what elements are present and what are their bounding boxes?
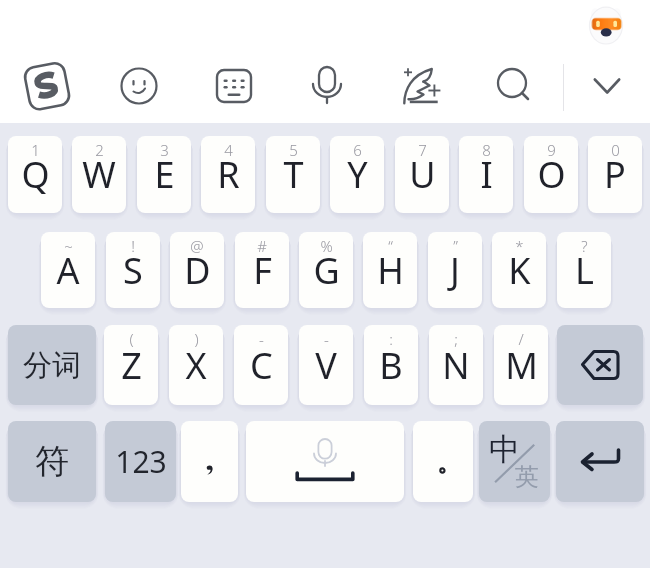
button[interactable]: - xyxy=(299,325,353,405)
staticText: T xyxy=(283,150,304,199)
staticText: S xyxy=(123,246,143,295)
button[interactable]: Chinese English toggle xyxy=(479,421,550,502)
staticText: K xyxy=(508,246,531,295)
staticText: * xyxy=(515,236,524,256)
button[interactable]: “ xyxy=(363,232,417,308)
staticText: H xyxy=(377,246,404,295)
staticText: F xyxy=(253,246,272,295)
button[interactable]: 7 xyxy=(395,136,449,213)
staticText: M xyxy=(505,341,538,390)
button[interactable]: ( xyxy=(104,325,158,405)
staticText: 3 xyxy=(160,140,169,160)
button[interactable]: 123 xyxy=(105,421,176,502)
button[interactable]: Comma xyxy=(181,421,238,502)
button[interactable]: 6 xyxy=(330,136,384,213)
staticText: O xyxy=(537,150,566,199)
button[interactable]: ~ xyxy=(41,232,95,308)
button[interactable]: 2 xyxy=(72,136,126,213)
button[interactable]: Period xyxy=(413,421,473,502)
staticText: 7 xyxy=(418,140,427,160)
staticText: L xyxy=(575,246,594,295)
staticText: 符 xyxy=(35,440,69,483)
staticText: @ xyxy=(190,236,204,256)
staticText: 9 xyxy=(547,140,556,160)
button[interactable]: 3 xyxy=(137,136,191,213)
staticText: Z xyxy=(121,341,142,390)
button[interactable]: 4 xyxy=(201,136,255,213)
staticText: W xyxy=(82,150,116,199)
staticText: C xyxy=(250,341,273,390)
button[interactable]: Space xyxy=(246,421,404,502)
button[interactable]: Sogou input method xyxy=(17,56,77,116)
button[interactable]: 9 xyxy=(524,136,578,213)
staticText: 4 xyxy=(224,140,233,160)
button[interactable]: 分词 xyxy=(8,325,96,405)
button[interactable]: @ xyxy=(170,232,224,308)
staticText: ) xyxy=(194,329,199,349)
staticText: ” xyxy=(453,236,458,256)
staticText: V xyxy=(315,341,337,390)
button[interactable]: ! xyxy=(106,232,160,308)
staticText: 分词 xyxy=(23,347,81,384)
button[interactable]: Profile avatar xyxy=(589,4,623,44)
staticText: 1 xyxy=(31,140,40,160)
button[interactable]: % xyxy=(299,232,353,308)
button[interactable]: 5 xyxy=(266,136,320,213)
staticText: P xyxy=(604,150,626,199)
staticText: 6 xyxy=(353,140,362,160)
staticText: I xyxy=(480,150,493,199)
staticText: - xyxy=(324,329,329,349)
staticText: ! xyxy=(131,236,135,256)
staticText: : xyxy=(389,329,393,349)
button[interactable]: Handwriting xyxy=(393,58,449,114)
staticText: 英 xyxy=(515,462,539,492)
staticText: # xyxy=(257,236,267,256)
button[interactable]: 0 xyxy=(588,136,642,213)
button[interactable]: ; xyxy=(429,325,483,405)
staticText: / xyxy=(518,329,524,349)
staticText: Y xyxy=(347,150,368,199)
staticText: Q xyxy=(21,150,50,199)
button[interactable]: 1 xyxy=(8,136,62,213)
staticText: ? xyxy=(581,236,588,256)
staticText: ( xyxy=(129,329,134,349)
button[interactable]: ” xyxy=(428,232,482,308)
staticText: % xyxy=(320,236,333,256)
button[interactable]: Emoji xyxy=(114,61,164,111)
button[interactable]: : xyxy=(364,325,418,405)
staticText: U xyxy=(409,150,436,199)
button[interactable]: Collapse keyboard xyxy=(587,66,627,106)
staticText: J xyxy=(450,246,460,295)
staticText: A xyxy=(56,246,80,295)
staticText: N xyxy=(442,341,470,390)
staticText: R xyxy=(217,150,240,199)
staticText: 2 xyxy=(95,140,104,160)
staticText: “ xyxy=(388,236,393,256)
button[interactable]: Search xyxy=(488,60,538,110)
staticText: ~ xyxy=(64,236,73,256)
button[interactable]: Keyboard layout xyxy=(209,61,259,111)
button[interactable]: * xyxy=(492,232,546,308)
button[interactable]: Voice input xyxy=(302,60,352,110)
staticText: X xyxy=(185,341,207,390)
staticText: - xyxy=(259,329,264,349)
button[interactable]: Backspace xyxy=(557,325,643,405)
staticText: 0 xyxy=(611,140,620,160)
staticText: 5 xyxy=(289,140,298,160)
staticText: 123 xyxy=(115,441,167,482)
staticText: B xyxy=(379,341,403,390)
button[interactable]: 8 xyxy=(459,136,513,213)
button[interactable]: ) xyxy=(169,325,223,405)
button[interactable]: ? xyxy=(557,232,611,308)
button[interactable]: 符 xyxy=(8,421,96,502)
staticText: ; xyxy=(454,329,458,349)
button[interactable]: / xyxy=(494,325,548,405)
staticText: D xyxy=(184,246,211,295)
staticText: E xyxy=(154,150,175,199)
staticText: 8 xyxy=(482,140,491,160)
staticText: G xyxy=(313,246,340,295)
staticText: 中 xyxy=(489,430,520,469)
button[interactable]: Enter xyxy=(556,421,644,502)
button[interactable]: # xyxy=(235,232,289,308)
button[interactable]: - xyxy=(234,325,288,405)
